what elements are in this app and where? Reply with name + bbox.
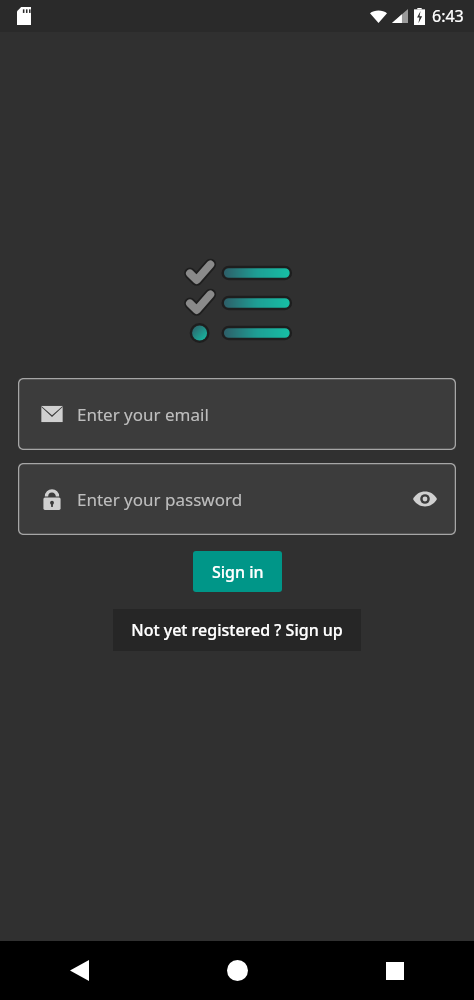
button[interactable]: Not yet registered ? Sign up	[113, 609, 361, 651]
staticText: Enter your email	[77, 403, 209, 426]
button[interactable]: Recent apps	[316, 941, 474, 1000]
button[interactable]: Home	[158, 941, 316, 1000]
staticText: Enter your password	[77, 488, 243, 511]
button[interactable]: Show password	[411, 485, 439, 513]
button[interactable]: Enter your email	[18, 378, 456, 450]
staticText: 6:43	[432, 5, 464, 27]
button[interactable]: Enter your password	[18, 463, 456, 535]
button[interactable]: Back	[0, 941, 158, 1000]
staticText: Sign in	[212, 561, 264, 583]
staticText: Not yet registered ? Sign up	[131, 619, 343, 641]
button[interactable]: Sign in	[193, 551, 282, 592]
